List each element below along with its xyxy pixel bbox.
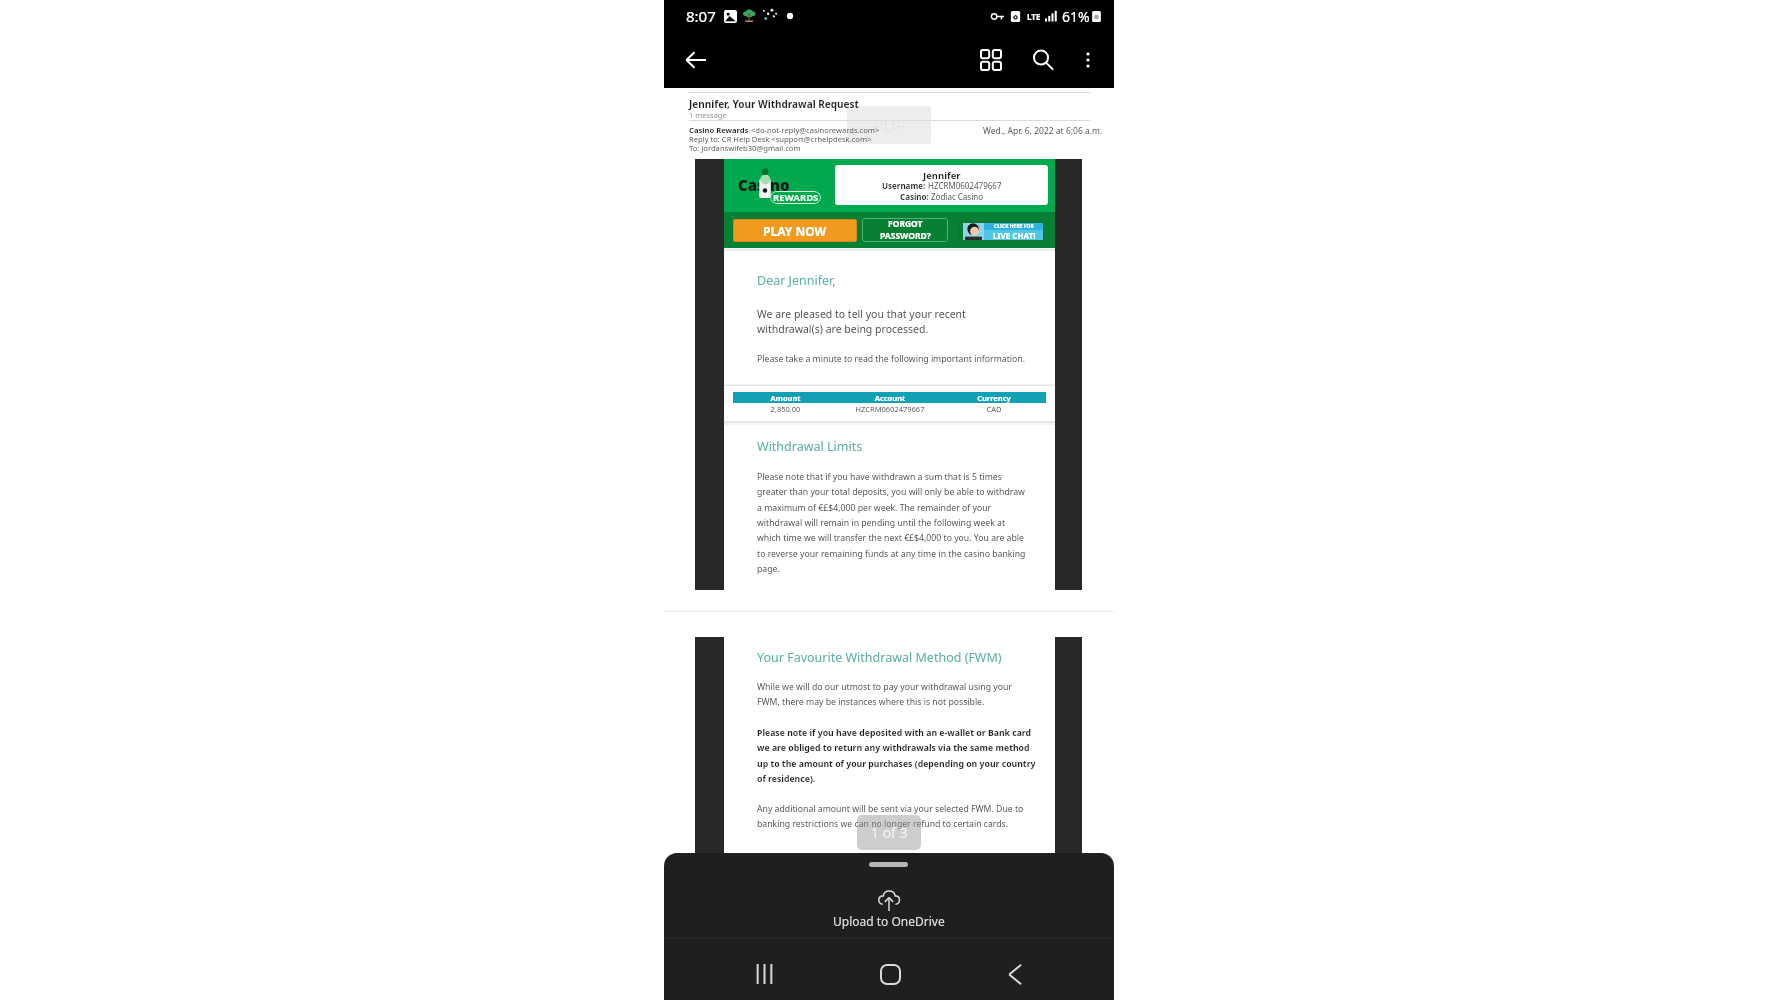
staticText: FORGOT bbox=[888, 218, 923, 230]
staticText: While we will do our utmost to pay your … bbox=[757, 681, 1012, 693]
button[interactable]: PLAY NOW bbox=[733, 219, 857, 242]
staticText: HZCRM0602479667 bbox=[838, 404, 942, 414]
staticText: page. bbox=[757, 563, 780, 575]
staticText: 1 message bbox=[689, 110, 727, 120]
staticText: 61% bbox=[1062, 7, 1090, 26]
staticText: Dear Jennifer, bbox=[757, 272, 836, 289]
staticText: 2,850.00 bbox=[733, 404, 838, 414]
staticText: a maximum of €£$4,000 per week. The rema… bbox=[757, 502, 992, 514]
staticText: Your Favourite Withdrawal Method (FWM) bbox=[757, 649, 1002, 666]
staticText: Jennifer, Your Withdrawal Request bbox=[689, 97, 859, 111]
staticText: HZCRM0602479667 bbox=[928, 180, 1002, 191]
staticText: greater than your total deposits, you wi… bbox=[757, 486, 1025, 498]
staticText: CAD bbox=[942, 404, 1046, 414]
staticText: which time we will transfer the next €£$… bbox=[757, 532, 1024, 544]
staticText: We are pleased to tell you that your rec… bbox=[757, 307, 966, 321]
button[interactable]: Upload to OneDrive bbox=[664, 853, 1114, 939]
staticText: PASSWORD? bbox=[880, 230, 931, 242]
staticText: withdrawal will remain in pending until … bbox=[757, 517, 1006, 529]
staticText: to reverse your remaining funds at any t… bbox=[757, 548, 1026, 560]
button[interactable]: More options bbox=[1068, 40, 1108, 80]
staticText: 1 of 3 bbox=[871, 823, 908, 842]
staticText: of residence). bbox=[757, 773, 816, 785]
staticText: Casino Rewards bbox=[689, 125, 749, 135]
staticText: Please note that if you have withdrawn a… bbox=[757, 471, 1002, 483]
staticText: Any additional amount will be sent via y… bbox=[757, 803, 1024, 815]
staticText: banking restrictions we can no longer re… bbox=[757, 818, 1009, 830]
button[interactable]: Back bbox=[674, 38, 718, 82]
staticText: Withdrawal Limits bbox=[757, 438, 863, 455]
staticText: Cas bbox=[738, 175, 765, 195]
staticText: FWM, there may be instances where this i… bbox=[757, 696, 985, 708]
staticText: Please note if you have deposited with a… bbox=[757, 727, 1032, 739]
staticText: LTE bbox=[1027, 11, 1041, 22]
staticText: Casino: bbox=[900, 191, 931, 202]
staticText: Currency bbox=[942, 393, 1046, 403]
staticText: 8:07 bbox=[686, 6, 716, 26]
staticText: PLAY NOW bbox=[763, 223, 827, 239]
staticText: To: Jordanswifeb30@gmail.com bbox=[689, 143, 801, 153]
staticText: Account bbox=[838, 393, 942, 403]
staticText: <do-not-reply@casinorewards.com> bbox=[749, 125, 880, 135]
button[interactable]: Search bbox=[1022, 39, 1064, 81]
staticText: CLICK HERE FOR bbox=[994, 223, 1034, 230]
staticText: Wed., Apr. 6, 2022 at 6:06 a.m. bbox=[983, 125, 1103, 137]
button[interactable]: Recent apps bbox=[740, 950, 788, 998]
staticText: Reply to: CR Help Desk <support@crhelpde… bbox=[689, 134, 872, 144]
staticText: Zodiac Casino bbox=[931, 191, 984, 202]
button[interactable]: Back bbox=[991, 950, 1039, 998]
button[interactable]: Home bbox=[866, 950, 914, 998]
staticText: up to the amount of your purchases (depe… bbox=[757, 758, 1036, 770]
staticText: Upload to OneDrive bbox=[833, 913, 945, 929]
staticText: Amount bbox=[733, 393, 838, 403]
staticText: no bbox=[770, 175, 790, 195]
staticText: PDF bbox=[873, 114, 905, 137]
button[interactable]: Grid view bbox=[970, 39, 1012, 81]
staticText: Jennifer bbox=[923, 169, 961, 182]
button[interactable]: FORGOT bbox=[862, 218, 948, 242]
staticText: Please take a minute to read the followi… bbox=[757, 353, 1025, 365]
staticText: REWARDS bbox=[773, 191, 819, 204]
staticText: LIVE CHAT! bbox=[993, 230, 1036, 240]
staticText: we are obliged to return any withdrawals… bbox=[757, 742, 1030, 754]
button[interactable]: Click here for live chat bbox=[959, 221, 1044, 242]
staticText: Username: bbox=[882, 180, 928, 191]
staticText: withdrawal(s) are being processed. bbox=[757, 322, 929, 336]
